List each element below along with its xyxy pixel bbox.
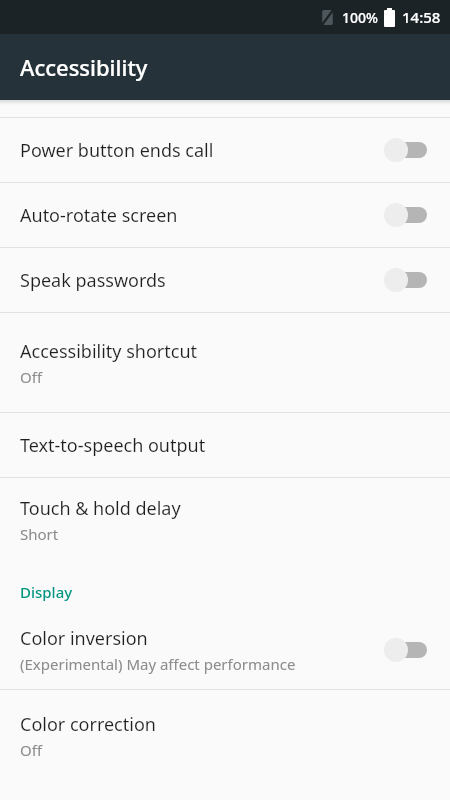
staticText: Touch & hold delay: [20, 496, 181, 521]
staticText: Off: [20, 367, 43, 387]
button[interactable]: Color inversion: [0, 610, 450, 689]
button[interactable]: Speak passwords: [0, 248, 450, 312]
button[interactable]: Auto-rotate screen: [384, 198, 438, 232]
button[interactable]: Text-to-speech output: [0, 413, 450, 477]
staticText: Auto-rotate screen: [20, 203, 178, 228]
staticText: Color inversion: [20, 626, 148, 651]
button[interactable]: Color inversion: [384, 633, 438, 667]
staticText: Accessibility: [20, 52, 148, 82]
button[interactable]: Touch & hold delay: [0, 478, 450, 562]
staticText: Power button ends call: [20, 138, 214, 163]
staticText: 100%: [342, 8, 378, 27]
staticText: Speak passwords: [20, 268, 166, 293]
staticText: (Experimental) May affect performance: [20, 654, 296, 674]
staticText: Display: [20, 582, 73, 602]
staticText: Text-to-speech output: [20, 433, 206, 458]
button[interactable]: Color correction: [0, 690, 450, 782]
staticText: Off: [20, 740, 43, 760]
button[interactable]: Power button ends call: [384, 133, 438, 167]
staticText: 14:58: [402, 7, 441, 27]
staticText: Accessibility shortcut: [20, 339, 198, 364]
staticText: Short: [20, 524, 59, 544]
button[interactable]: Accessibility shortcut: [0, 313, 450, 412]
button[interactable]: Power button ends call: [0, 118, 450, 182]
button[interactable]: Speak passwords: [384, 263, 438, 297]
button[interactable]: Auto-rotate screen: [0, 183, 450, 247]
staticText: Color correction: [20, 712, 156, 737]
